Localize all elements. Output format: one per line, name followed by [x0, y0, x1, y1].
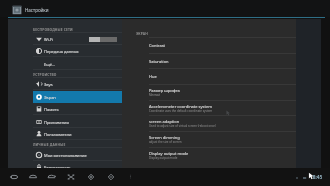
- staticText: Ещё…: [44, 62, 117, 67]
- button[interactable]: Volume up: [86, 172, 96, 182]
- staticText: Настройки: [25, 7, 49, 13]
- staticText: ЛИЧНЫЕ ДАННЫЕ: [33, 142, 66, 146]
- staticText: Display output mode: [149, 156, 178, 160]
- staticText: Приложения: [44, 120, 117, 125]
- button[interactable]: Wi-Fi toggle: [89, 37, 117, 42]
- button[interactable]: Размер шрифта: [149, 84, 296, 100]
- staticText: БЕСПРОВОДНЫЕ СЕТИ: [33, 27, 73, 31]
- button[interactable]: Saturation: [149, 53, 296, 69]
- button[interactable]: Home: [28, 172, 38, 182]
- staticText: ЭКРАН: [136, 31, 148, 35]
- staticText: УСТРОЙСТВО: [33, 72, 57, 76]
- staticText: Память: [44, 107, 117, 112]
- staticText: Мои местоположение: [44, 153, 117, 158]
- staticText: Wi-Fi: [44, 37, 89, 42]
- button[interactable]: More options: [127, 173, 134, 180]
- button[interactable]: Screen dimming: [149, 131, 296, 147]
- staticText: screen adaption: [149, 119, 180, 124]
- button[interactable]: Display output mode: [149, 147, 296, 163]
- button[interactable]: Мои местоположение: [33, 149, 123, 161]
- button[interactable]: Приложения: [33, 116, 123, 128]
- staticText: 18:45: [310, 174, 323, 181]
- staticText: Передача данных: [44, 49, 117, 54]
- button[interactable]: Память: [33, 103, 123, 115]
- staticText: Coordinate uses the default coordinate s…: [149, 109, 213, 113]
- button[interactable]: Contrast: [149, 37, 296, 53]
- staticText: Display output mode: [149, 151, 189, 156]
- button[interactable]: Back: [9, 172, 19, 182]
- button[interactable]: Settings icon: [0, 0, 330, 17]
- button[interactable]: Пользователи: [33, 128, 123, 140]
- staticText: Screen dimming: [149, 135, 180, 140]
- button[interactable]: Звук: [33, 78, 123, 90]
- button[interactable]: screen adaption: [149, 115, 296, 131]
- staticText: Экран: [44, 95, 117, 100]
- staticText: Hue: [149, 74, 157, 79]
- other: Settings icon: [12, 5, 22, 15]
- staticText: Размер шрифта: [149, 88, 180, 93]
- staticText: Accelerometer coordinate system: [149, 104, 212, 109]
- staticText: Пользователи: [44, 132, 117, 137]
- button[interactable]: Volume down: [106, 172, 116, 182]
- button[interactable]: Ещё…: [33, 58, 123, 70]
- staticText: Used to adjust size of virtual screen (r…: [149, 124, 216, 128]
- button[interactable]: Wi-Fi: [33, 33, 123, 45]
- staticText: Мелкий: [149, 93, 161, 97]
- button[interactable]: Безопасность: [33, 161, 123, 173]
- button[interactable]: Recents: [47, 172, 57, 182]
- button[interactable]: Hue: [149, 68, 296, 84]
- staticText: Saturation: [149, 59, 169, 64]
- staticText: adjust the size of screen: [149, 140, 182, 144]
- button[interactable]: Передача данных: [33, 45, 123, 57]
- button[interactable]: Fullscreen: [66, 172, 76, 182]
- staticText: Contrast: [149, 43, 166, 48]
- button[interactable]: Экран: [33, 91, 123, 103]
- staticText: Звук: [44, 82, 117, 87]
- staticText: Безопасность: [44, 165, 117, 170]
- button[interactable]: Accelerometer coordinate system: [149, 100, 296, 116]
